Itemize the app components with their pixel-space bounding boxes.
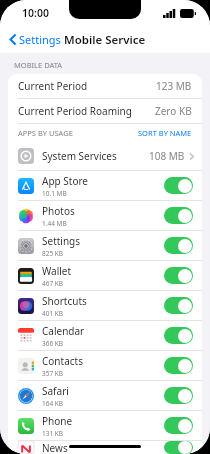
staticText: Settings	[19, 32, 61, 47]
staticText: News	[42, 441, 68, 454]
staticText: 10.1 MB	[42, 189, 67, 198]
staticText: Wallet	[42, 264, 72, 278]
button[interactable]: Current Period	[8, 74, 202, 98]
staticText: 366 KB	[42, 339, 64, 348]
button[interactable]: Toggle	[164, 267, 193, 284]
button[interactable]: App Store	[8, 171, 202, 200]
staticText: 164 KB	[42, 399, 64, 408]
button[interactable]: News	[8, 441, 202, 454]
staticText: 825 KB	[42, 249, 64, 258]
staticText: 108 MB	[149, 149, 185, 163]
button[interactable]: Toggle	[164, 177, 193, 194]
staticText: SORT BY NAME	[138, 128, 192, 138]
button[interactable]: Toggle	[164, 417, 193, 434]
button[interactable]: SORT BY NAME	[138, 128, 192, 138]
staticText: Contacts	[42, 354, 83, 368]
button[interactable]: Toggle	[164, 441, 193, 454]
button[interactable]: Shortcuts	[8, 291, 202, 320]
button[interactable]: Toggle	[164, 357, 193, 374]
button[interactable]: Wallet	[8, 261, 202, 290]
staticText: Calendar	[42, 324, 85, 338]
button[interactable]: Calendar	[8, 321, 202, 350]
button[interactable]: Toggle	[164, 387, 193, 404]
staticText: Mobile Service	[64, 32, 146, 48]
staticText: Current Period	[18, 79, 88, 93]
button[interactable]: Toggle	[164, 207, 193, 224]
staticText: App Store	[42, 174, 89, 188]
button[interactable]: Safari	[8, 381, 202, 410]
staticText: 131 KB	[42, 429, 64, 438]
button[interactable]: Toggle	[164, 327, 193, 344]
staticText: Phone	[42, 414, 73, 428]
button[interactable]: Settings	[7, 29, 63, 50]
button[interactable]: Current Period Roaming	[8, 99, 202, 123]
button[interactable]: Toggle	[164, 297, 193, 314]
button[interactable]: Settings	[8, 231, 202, 260]
button[interactable]: System Services	[8, 142, 202, 170]
button[interactable]: Phone	[8, 411, 202, 440]
staticText: 467 KB	[42, 279, 64, 288]
staticText: Settings	[42, 234, 81, 248]
staticText: 401 KB	[42, 309, 64, 318]
staticText: Current Period Roaming	[18, 104, 132, 118]
staticText: 10:00	[22, 6, 49, 20]
staticText: Shortcuts	[42, 294, 87, 308]
staticText: 123 MB	[156, 79, 192, 93]
staticText: Safari	[42, 384, 69, 398]
button[interactable]: Photos	[8, 201, 202, 230]
staticText: System Services	[42, 149, 117, 163]
button[interactable]: Contacts	[8, 351, 202, 380]
staticText: APPS BY USAGE	[18, 128, 73, 138]
button[interactable]: Toggle	[164, 237, 193, 254]
staticText: MOBILE DATA	[14, 60, 63, 70]
staticText: 1.44 MB	[42, 219, 67, 228]
staticText: 357 KB	[42, 369, 64, 378]
staticText: Zero KB	[155, 104, 192, 118]
staticText: Photos	[42, 204, 75, 218]
